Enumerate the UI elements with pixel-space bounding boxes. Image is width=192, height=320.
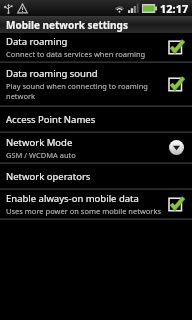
other: Open network mode options — [168, 139, 185, 156]
staticText: Access Point Names — [6, 113, 96, 126]
staticText: 12:17 — [160, 1, 189, 16]
staticText: Network operators — [6, 170, 91, 183]
button[interactable]: Data roaming — [0, 33, 192, 61]
staticText: Network Mode — [6, 136, 73, 149]
button[interactable]: Data roaming sound — [0, 63, 192, 105]
staticText: Connect to data services when roaming — [6, 49, 146, 59]
staticText: Data roaming sound — [6, 67, 98, 80]
staticText: Play sound when connecting to roaming ne… — [6, 81, 148, 101]
button[interactable]: Network Mode — [0, 133, 192, 162]
staticText: GSM / WCDMA auto — [6, 150, 76, 160]
staticText: Enable always-on mobile data — [6, 192, 139, 205]
button[interactable]: Network operators — [0, 164, 192, 188]
button[interactable]: Enable always-on mobile data — [0, 190, 192, 218]
button[interactable]: Access Point Names — [0, 107, 192, 131]
staticText: Uses more power on some mobile networks — [6, 206, 162, 216]
staticText: Mobile network settings — [6, 18, 128, 32]
staticText: Data roaming — [6, 35, 68, 48]
